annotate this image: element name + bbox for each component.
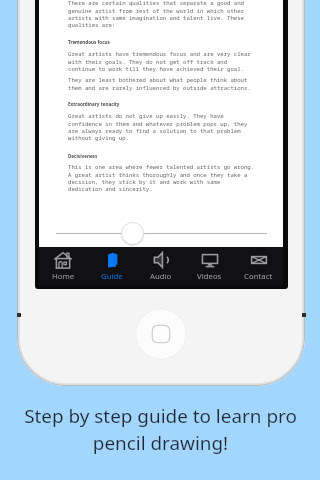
- staticText: Great artists do not give up easily. The…: [68, 112, 248, 141]
- button[interactable]: Brightness slider: [39, 218, 283, 247]
- staticText: Tremendous focus: [68, 39, 110, 45]
- staticText: Extraordinary tenacity: [68, 101, 120, 107]
- staticText: Great artists have tremendous focus and …: [68, 50, 251, 72]
- staticText: Guide: [101, 271, 123, 282]
- staticText: Audio: [150, 271, 172, 282]
- staticText: They are least bothered about what peopl…: [68, 76, 251, 91]
- staticText: Home: [52, 271, 75, 282]
- button[interactable]: Contact: [234, 247, 283, 286]
- staticText: Videos: [197, 271, 222, 282]
- button[interactable]: Videos: [185, 247, 234, 286]
- staticText: This is one area where fewer talented ar…: [68, 163, 255, 192]
- button[interactable]: Audio: [136, 247, 185, 286]
- button[interactable]: Home: [39, 247, 87, 286]
- button[interactable]: Guide: [87, 247, 136, 286]
- staticText: There are certain qualities that separat…: [68, 0, 244, 28]
- staticText: Contact: [244, 271, 273, 282]
- staticText: Decisiveness: [68, 153, 98, 159]
- button[interactable]: Home button: [135, 308, 187, 360]
- staticText: Step by step guide to learn pro pencil d…: [24, 403, 297, 456]
